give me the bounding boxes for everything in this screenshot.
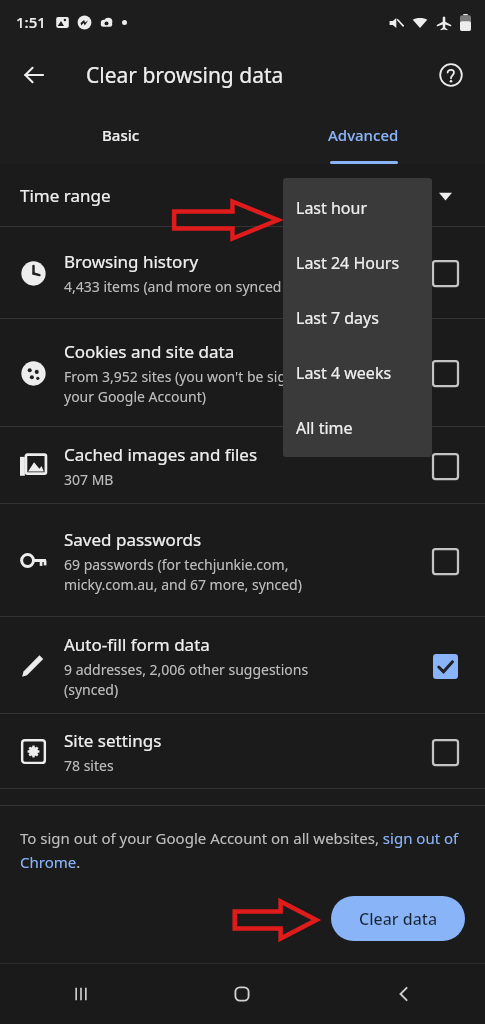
button[interactable]: Site settings <box>0 714 485 789</box>
button[interactable]: Auto-fill form data <box>0 617 485 714</box>
button[interactable]: Advanced <box>242 106 485 164</box>
staticText: From 3,952 sites (you won't be signed ou… <box>64 367 354 406</box>
button[interactable]: Browsing history <box>0 227 485 319</box>
button[interactable]: Toggle <box>425 253 465 293</box>
button[interactable]: Home <box>161 964 323 1024</box>
staticText: Cached images and files <box>64 443 258 466</box>
staticText: 4,433 items (and more on synced devices) <box>64 277 338 296</box>
button[interactable]: Clear data <box>331 896 465 941</box>
staticText: All time <box>296 417 353 439</box>
staticText: To sign out of your Google Account on al… <box>20 828 465 872</box>
button[interactable]: Toggle <box>425 646 465 686</box>
staticText: Last 4 weeks <box>296 362 392 384</box>
staticText: 307 MB <box>64 470 114 489</box>
button[interactable]: Cached images and files <box>0 427 485 504</box>
button[interactable]: Last 24 Hours <box>283 235 432 290</box>
staticText: Advanced <box>328 125 399 145</box>
staticText: Last 24 Hours <box>296 252 400 274</box>
staticText: 1:51 <box>16 12 46 32</box>
staticText: Saved passwords <box>64 528 202 551</box>
button[interactable]: Last 7 days <box>283 290 432 345</box>
staticText: 78 sites <box>64 756 114 775</box>
staticText: Basic <box>102 125 140 145</box>
staticText: Last 7 days <box>296 307 379 329</box>
button[interactable]: Back <box>10 51 58 99</box>
button[interactable]: All time <box>283 400 432 455</box>
button[interactable]: Cookies and site data <box>0 319 485 427</box>
staticText: Browsing history <box>64 250 199 273</box>
button[interactable]: Saved passwords <box>0 504 485 617</box>
staticText: Site settings <box>64 729 162 752</box>
staticText: Cookies and site data <box>64 340 235 363</box>
staticText: Clear data <box>359 908 438 930</box>
staticText: 9 addresses, 2,006 other suggestions (sy… <box>64 660 309 699</box>
staticText: 69 passwords (for techjunkie.com, micky.… <box>64 555 302 594</box>
button[interactable]: Back <box>323 964 485 1024</box>
staticText: Time range <box>20 184 111 207</box>
button[interactable]: Basic <box>0 106 242 164</box>
button[interactable]: Recent apps <box>0 964 161 1024</box>
button[interactable]: Toggle <box>425 541 465 581</box>
button[interactable]: Toggle <box>425 353 465 393</box>
button[interactable]: Help <box>427 51 475 99</box>
button[interactable]: Last 4 weeks <box>283 345 432 400</box>
staticText: Last hour <box>296 197 368 219</box>
button[interactable]: Expand time range <box>431 182 459 210</box>
button[interactable]: Toggle <box>425 732 465 772</box>
staticText: Auto-fill form data <box>64 633 210 656</box>
staticText: Clear browsing data <box>86 61 284 90</box>
button[interactable]: Last hour <box>283 180 432 235</box>
button[interactable]: Toggle <box>425 446 465 486</box>
